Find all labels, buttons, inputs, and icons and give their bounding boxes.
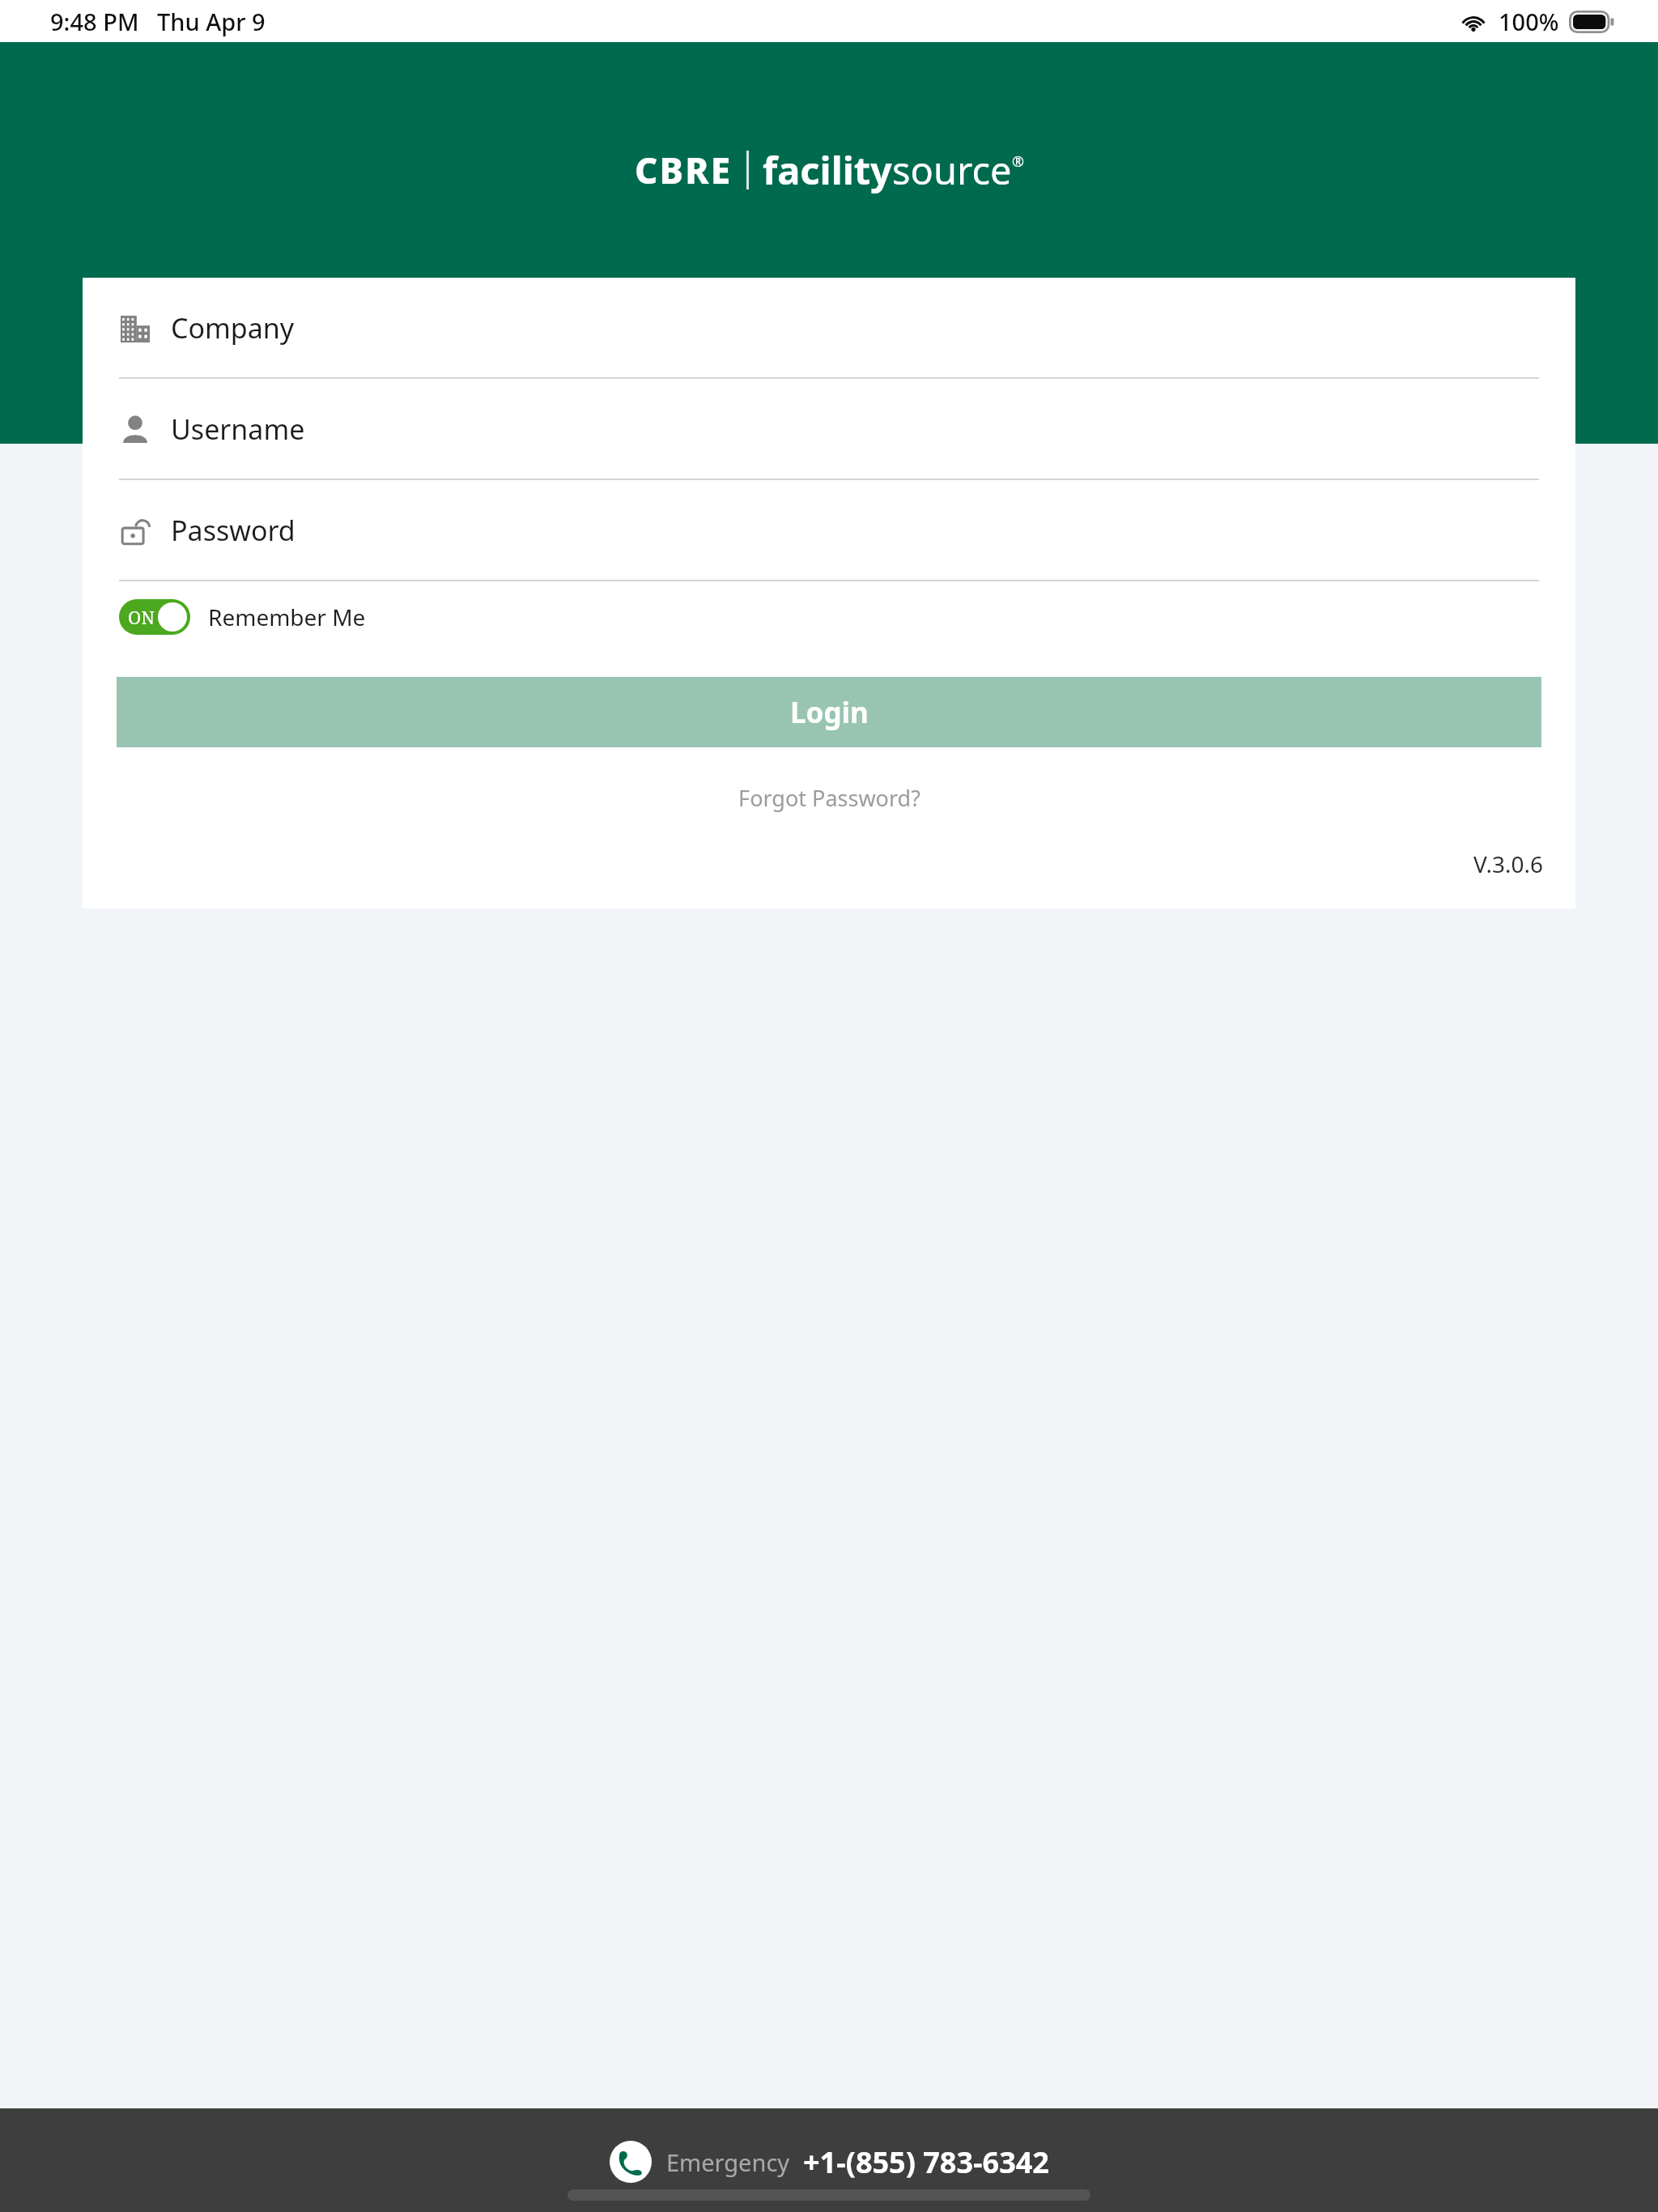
button[interactable]: Emergency <box>610 2141 1049 2183</box>
staticText: Remember Me <box>208 602 366 632</box>
staticText: 9:48 PM <box>50 6 139 37</box>
staticText: source <box>892 144 1012 196</box>
button[interactable]: Forgot Password? <box>83 783 1575 813</box>
staticText: ON <box>128 605 155 629</box>
button[interactable]: Password <box>83 480 1575 581</box>
button[interactable]: Remember Me toggle, on <box>119 599 366 635</box>
staticText: 100% <box>1499 6 1559 37</box>
staticText: Login <box>790 693 869 732</box>
button[interactable]: Company <box>83 278 1575 379</box>
staticText: Username <box>171 410 305 448</box>
staticText: Thu Apr 9 <box>157 6 266 37</box>
staticText: +1-(855) 783-6342 <box>803 2142 1049 2182</box>
button[interactable]: Remember Me toggle, on <box>119 599 190 635</box>
staticText: CBRE <box>635 146 733 194</box>
staticText: V.3.0.6 <box>1473 849 1543 879</box>
staticText: Forgot Password? <box>738 783 920 813</box>
staticText: Company <box>171 309 295 347</box>
staticText: ® <box>1012 151 1024 172</box>
staticText: Password <box>171 512 295 549</box>
staticText: facility <box>763 144 892 196</box>
staticText: Emergency <box>666 2146 790 2178</box>
button[interactable]: Username <box>83 379 1575 480</box>
button[interactable]: Login <box>117 677 1541 747</box>
